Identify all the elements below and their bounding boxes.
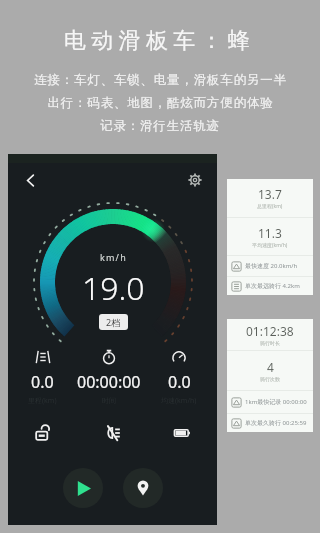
button[interactable]: Map — [123, 468, 163, 508]
button[interactable]: Settings — [183, 168, 207, 192]
staticText: 00:00:00 — [77, 371, 141, 393]
button[interactable]: 4 — [227, 351, 313, 390]
staticText: 1km最快记录 00:00:00 — [245, 398, 307, 406]
staticText: 时间 — [102, 396, 116, 405]
staticText: km/h — [100, 251, 127, 263]
staticText: 0.0 — [31, 371, 54, 393]
staticText: 4 — [267, 359, 274, 375]
button[interactable]: 最快速度 20.0km/h — [231, 256, 313, 276]
staticText: 0.0 — [168, 371, 191, 393]
button[interactable]: 01:12:38 — [227, 319, 313, 350]
staticText: 13.7 — [258, 186, 282, 202]
button[interactable]: 13.7 — [227, 179, 313, 217]
staticText: 19.0 — [82, 266, 145, 310]
button[interactable]: Back — [18, 168, 42, 192]
button[interactable]: 单次最久骑行 00:25:59 — [231, 414, 313, 432]
button[interactable]: 11.3 — [227, 218, 313, 255]
staticText: 2档 — [106, 316, 121, 328]
button[interactable]: Battery — [164, 415, 200, 451]
staticText: 骑行时长 — [260, 340, 280, 346]
staticText: 11.3 — [258, 225, 282, 241]
staticText: 单次最久骑行 00:25:59 — [245, 419, 307, 427]
button[interactable]: Lock — [25, 415, 61, 451]
staticText: 平均速度(km/h) — [252, 242, 288, 249]
staticText: 记录：滑行生活轨迹 — [100, 118, 220, 134]
staticText: 最快速度 20.0km/h — [245, 262, 298, 270]
staticText: 连接：车灯、车锁、电量，滑板车的另一半 — [34, 72, 287, 88]
button[interactable]: Headlight — [95, 415, 131, 451]
button[interactable]: 单次最远骑行 4.2km — [231, 277, 313, 295]
staticText: 01:12:38 — [246, 323, 294, 339]
staticText: 里程(km) — [28, 396, 57, 406]
staticText: 总里程(km) — [257, 203, 283, 210]
staticText: 电动滑板车：蜂 — [64, 27, 256, 55]
staticText: 均速(km/h) — [161, 396, 197, 406]
button[interactable]: 2档 — [106, 316, 121, 328]
staticText: 单次最远骑行 4.2km — [245, 282, 300, 290]
staticText: 骑行次数 — [260, 376, 280, 382]
button[interactable]: Start — [63, 468, 103, 508]
staticText: 出行：码表、地图，酷炫而方便的体验 — [47, 95, 274, 111]
button[interactable]: 1km最快记录 00:00:00 — [231, 391, 313, 413]
